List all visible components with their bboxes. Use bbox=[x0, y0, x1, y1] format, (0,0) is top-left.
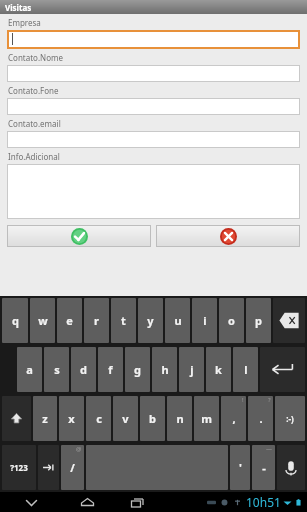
staticText: ! bbox=[242, 396, 244, 404]
button[interactable]: t bbox=[111, 298, 136, 343]
staticText: x bbox=[68, 411, 75, 426]
staticText: h bbox=[161, 362, 169, 377]
button[interactable]: h bbox=[152, 347, 177, 392]
staticText: e bbox=[66, 313, 73, 328]
button[interactable]: ?123 bbox=[2, 445, 36, 490]
button[interactable]: c bbox=[86, 396, 111, 441]
button[interactable]: Cancelar bbox=[156, 225, 300, 247]
staticText: n bbox=[176, 411, 184, 426]
button[interactable] bbox=[7, 131, 300, 148]
staticText: 10h51 bbox=[246, 494, 281, 510]
button[interactable]: — bbox=[252, 445, 275, 490]
staticText: g bbox=[134, 362, 141, 377]
staticText: t bbox=[121, 313, 126, 328]
staticText: y bbox=[147, 313, 154, 328]
staticText: s bbox=[54, 362, 60, 377]
button[interactable]: s bbox=[44, 347, 69, 392]
staticText: i bbox=[203, 313, 207, 328]
staticText: o bbox=[228, 313, 235, 328]
staticText: / bbox=[70, 460, 75, 475]
button[interactable]: m bbox=[194, 396, 219, 441]
staticText: ?123 bbox=[10, 462, 28, 473]
button[interactable]: Enter bbox=[260, 347, 305, 392]
button[interactable]: z bbox=[33, 396, 57, 441]
button[interactable]: Recent apps bbox=[112, 492, 162, 512]
button[interactable]: j bbox=[179, 347, 204, 392]
button[interactable]: y bbox=[138, 298, 163, 343]
staticText: b bbox=[149, 411, 156, 426]
button[interactable]: :-) bbox=[275, 396, 305, 441]
staticText: q bbox=[12, 313, 19, 328]
button[interactable]: Backspace bbox=[273, 298, 305, 343]
staticText: l bbox=[244, 362, 248, 377]
staticText: Contato.Fone bbox=[8, 85, 59, 96]
staticText: f bbox=[108, 362, 113, 377]
button[interactable]: ? bbox=[248, 396, 273, 441]
staticText: u bbox=[174, 313, 182, 328]
staticText: w bbox=[38, 313, 48, 328]
staticText: d bbox=[80, 362, 87, 377]
staticText: - bbox=[262, 460, 266, 475]
button[interactable] bbox=[7, 30, 300, 49]
button[interactable]: k bbox=[206, 347, 231, 392]
staticText: ? bbox=[268, 396, 271, 404]
button[interactable]: ! bbox=[221, 396, 246, 441]
button[interactable]: @ bbox=[61, 445, 84, 490]
button[interactable]: r bbox=[84, 298, 109, 343]
button[interactable]: Confirmar bbox=[7, 225, 151, 247]
staticText: . bbox=[259, 411, 263, 426]
staticText: a bbox=[26, 362, 33, 377]
button[interactable]: v bbox=[113, 396, 138, 441]
staticText: v bbox=[122, 411, 129, 426]
button[interactable]: ' bbox=[230, 445, 250, 490]
button[interactable]: u bbox=[165, 298, 190, 343]
button[interactable]: q bbox=[2, 298, 28, 343]
button[interactable]: g bbox=[125, 347, 150, 392]
button[interactable]: Hide keyboard bbox=[0, 492, 62, 512]
staticText: p bbox=[255, 313, 262, 328]
button[interactable]: l bbox=[233, 347, 258, 392]
staticText: k bbox=[215, 362, 222, 377]
button[interactable] bbox=[7, 98, 300, 115]
staticText: m bbox=[201, 411, 212, 426]
button[interactable]: p bbox=[246, 298, 271, 343]
staticText: Empresa bbox=[8, 17, 41, 28]
button[interactable]: Voice input bbox=[277, 445, 305, 490]
button[interactable]: n bbox=[167, 396, 192, 441]
button[interactable]: Shift bbox=[2, 396, 31, 441]
button[interactable]: w bbox=[30, 298, 55, 343]
staticText: — bbox=[266, 445, 273, 453]
staticText: j bbox=[190, 362, 194, 377]
button[interactable]: Tab bbox=[38, 445, 59, 490]
button[interactable]: a bbox=[17, 347, 42, 392]
staticText: @ bbox=[76, 445, 82, 453]
staticText: ' bbox=[239, 460, 242, 475]
button[interactable]: f bbox=[98, 347, 123, 392]
staticText: :-) bbox=[286, 413, 294, 424]
button[interactable]: b bbox=[140, 396, 165, 441]
staticText: r bbox=[94, 313, 99, 328]
staticText: Info.Adicional bbox=[8, 151, 60, 162]
button[interactable] bbox=[7, 164, 300, 219]
staticText: c bbox=[96, 411, 102, 426]
button[interactable]: Home bbox=[62, 492, 112, 512]
button[interactable]: e bbox=[57, 298, 82, 343]
staticText: Contato.email bbox=[8, 118, 61, 129]
button[interactable]: i bbox=[192, 298, 217, 343]
button[interactable]: d bbox=[71, 347, 96, 392]
staticText: z bbox=[42, 411, 48, 426]
button[interactable]: x bbox=[59, 396, 84, 441]
staticText: Contato.Nome bbox=[8, 52, 63, 63]
button[interactable]: o bbox=[219, 298, 244, 343]
button[interactable] bbox=[7, 65, 300, 82]
staticText: , bbox=[232, 411, 236, 426]
staticText: Visitas bbox=[5, 2, 32, 13]
